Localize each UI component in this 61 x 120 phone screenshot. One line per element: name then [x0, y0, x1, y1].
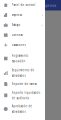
staticText: de auditoría — [11, 96, 28, 100]
staticText: Panel de control — [11, 3, 35, 7]
staticText: Reglamento — [11, 54, 28, 58]
button[interactable]: Aprobación de — [0, 102, 45, 116]
staticText: actividades — [11, 110, 25, 113]
button[interactable]: Empresa — [0, 10, 45, 20]
button[interactable]: Reglamento — [0, 50, 45, 67]
staticText: exposición — [11, 59, 25, 63]
staticText: Empresa — [40, 3, 56, 8]
staticText: Reporte de tareas — [11, 82, 36, 86]
staticText: Licencias — [11, 33, 22, 37]
button[interactable]: Seguimiento de — [0, 67, 45, 79]
button[interactable]: Panel de control — [0, 0, 45, 10]
staticText: Empresa — [11, 13, 21, 17]
button[interactable]: Trabajo — [0, 20, 45, 30]
staticText: Vacaciones — [11, 43, 25, 47]
staticText: Trabajo — [11, 23, 20, 27]
staticText: actividades — [11, 74, 25, 77]
button[interactable]: Licencias — [0, 30, 45, 40]
button[interactable]: Vacaciones — [0, 40, 45, 50]
staticText: Aprobación de — [11, 105, 32, 108]
staticText: Reporte liquidación — [11, 91, 40, 95]
button[interactable]: Reporte de tareas — [0, 79, 45, 89]
staticText: Seguimiento de — [11, 69, 34, 72]
button[interactable]: Reporte liquidación — [0, 89, 45, 102]
